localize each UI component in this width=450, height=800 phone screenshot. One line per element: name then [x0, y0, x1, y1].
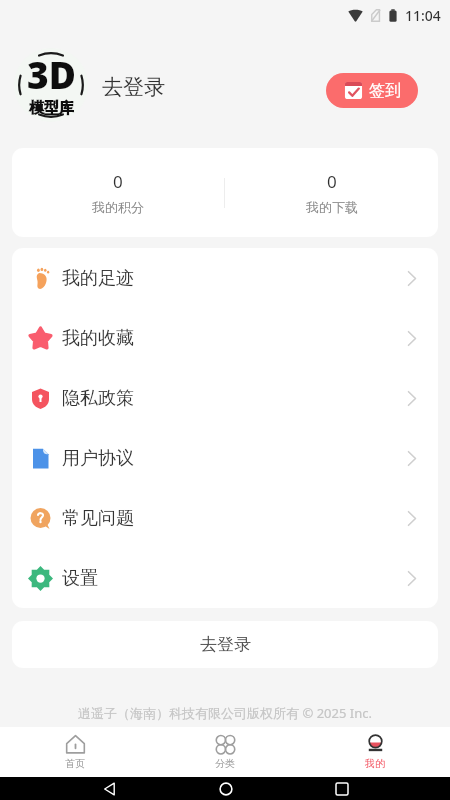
staticText: 去登录: [200, 634, 251, 655]
staticText: 逍遥子（海南）科技有限公司版权所有 © 2025 Inc.: [78, 704, 372, 722]
staticText: 我的: [365, 757, 385, 770]
staticText: 首页: [65, 757, 85, 770]
staticText: 0: [113, 170, 123, 193]
button[interactable]: 常见问题: [12, 488, 438, 548]
staticText: 0: [327, 170, 337, 193]
button[interactable]: 我的收藏: [12, 308, 438, 368]
button[interactable]: 隐私政策: [12, 368, 438, 428]
staticText: 常见问题: [62, 507, 134, 530]
staticText: 用户协议: [62, 447, 134, 470]
other: Recents: [336, 783, 348, 795]
staticText: 我的足迹: [62, 267, 134, 290]
other: Home: [219, 782, 233, 796]
button[interactable]: 去登录: [12, 621, 438, 668]
staticText: 我的积分: [92, 199, 144, 215]
staticText: 我的收藏: [62, 327, 134, 350]
staticText: 设置: [62, 567, 98, 590]
button[interactable]: 我的: [300, 727, 450, 777]
button[interactable]: 首页: [0, 727, 150, 777]
button[interactable]: 用户协议: [12, 428, 438, 488]
staticText: 11:04: [405, 6, 441, 25]
button[interactable]: 我的足迹: [12, 248, 438, 308]
button[interactable]: 设置: [12, 548, 438, 608]
staticText: 3D: [27, 49, 76, 99]
button[interactable]: 0: [225, 170, 438, 215]
staticText: 去登录: [102, 74, 165, 100]
button[interactable]: 分类: [150, 727, 300, 777]
staticText: 我的下载: [306, 199, 358, 215]
staticText: 签到: [369, 81, 401, 101]
staticText: 模型库: [29, 99, 74, 118]
button[interactable]: 0: [12, 170, 224, 215]
other: Back: [103, 782, 117, 796]
staticText: 分类: [215, 757, 235, 770]
staticText: 隐私政策: [62, 387, 134, 410]
button[interactable]: 签到: [326, 73, 418, 108]
